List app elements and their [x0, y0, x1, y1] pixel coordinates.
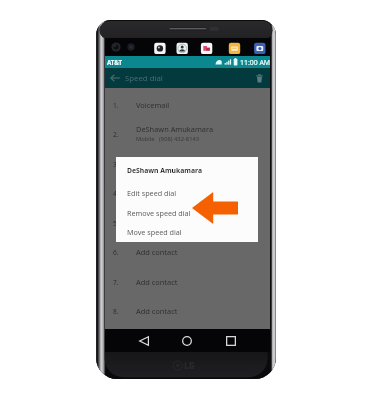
- staticText: DeShawn Amukamara: [136, 124, 214, 134]
- button[interactable]: Recent apps: [218, 330, 244, 352]
- button[interactable]: Back: [106, 68, 123, 88]
- button[interactable]: Remove speed dial: [116, 204, 258, 221]
- staticText: 5.: [113, 219, 119, 228]
- button[interactable]: 7.: [105, 267, 270, 297]
- staticText: 11:00 AM: [240, 58, 271, 67]
- button[interactable]: 1.: [105, 90, 270, 120]
- staticText: Add contact: [136, 277, 178, 287]
- staticText: AT&T: [107, 58, 123, 66]
- staticText: Add contact: [136, 188, 178, 198]
- button[interactable]: 8.: [105, 296, 270, 326]
- staticText: DeShawn Amukamara: [127, 166, 202, 175]
- staticText: Edit speed dial: [127, 188, 177, 198]
- staticText: Voicemail: [136, 100, 170, 110]
- button[interactable]: Back: [131, 330, 157, 352]
- staticText: 6.: [113, 248, 119, 257]
- button[interactable]: 6.: [105, 237, 270, 267]
- button[interactable]: 3.: [105, 149, 270, 179]
- button[interactable]: Edit speed dial: [116, 184, 258, 201]
- staticText: 4.: [113, 189, 119, 198]
- staticText: 7.: [113, 278, 119, 287]
- button[interactable]: 4.: [105, 178, 270, 208]
- staticText: Move speed dial: [127, 227, 182, 237]
- button[interactable]: Delete: [253, 68, 265, 88]
- button[interactable]: Home: [174, 330, 200, 352]
- staticText: 2.: [113, 130, 119, 139]
- staticText: Add contact: [136, 247, 178, 257]
- staticText: Remove speed dial: [127, 208, 191, 218]
- staticText: Add contact: [136, 159, 178, 169]
- staticText: Add contact: [136, 306, 178, 316]
- button[interactable]: Move speed dial: [116, 223, 258, 240]
- staticText: Mobile (908) 432-8143: [136, 135, 200, 143]
- button[interactable]: 2.: [105, 119, 270, 149]
- staticText: 1.: [113, 101, 119, 110]
- staticText: 3.: [113, 160, 119, 169]
- staticText: 8.: [113, 307, 119, 316]
- button[interactable]: 5.: [105, 208, 270, 238]
- staticText: Speed dial: [125, 73, 163, 84]
